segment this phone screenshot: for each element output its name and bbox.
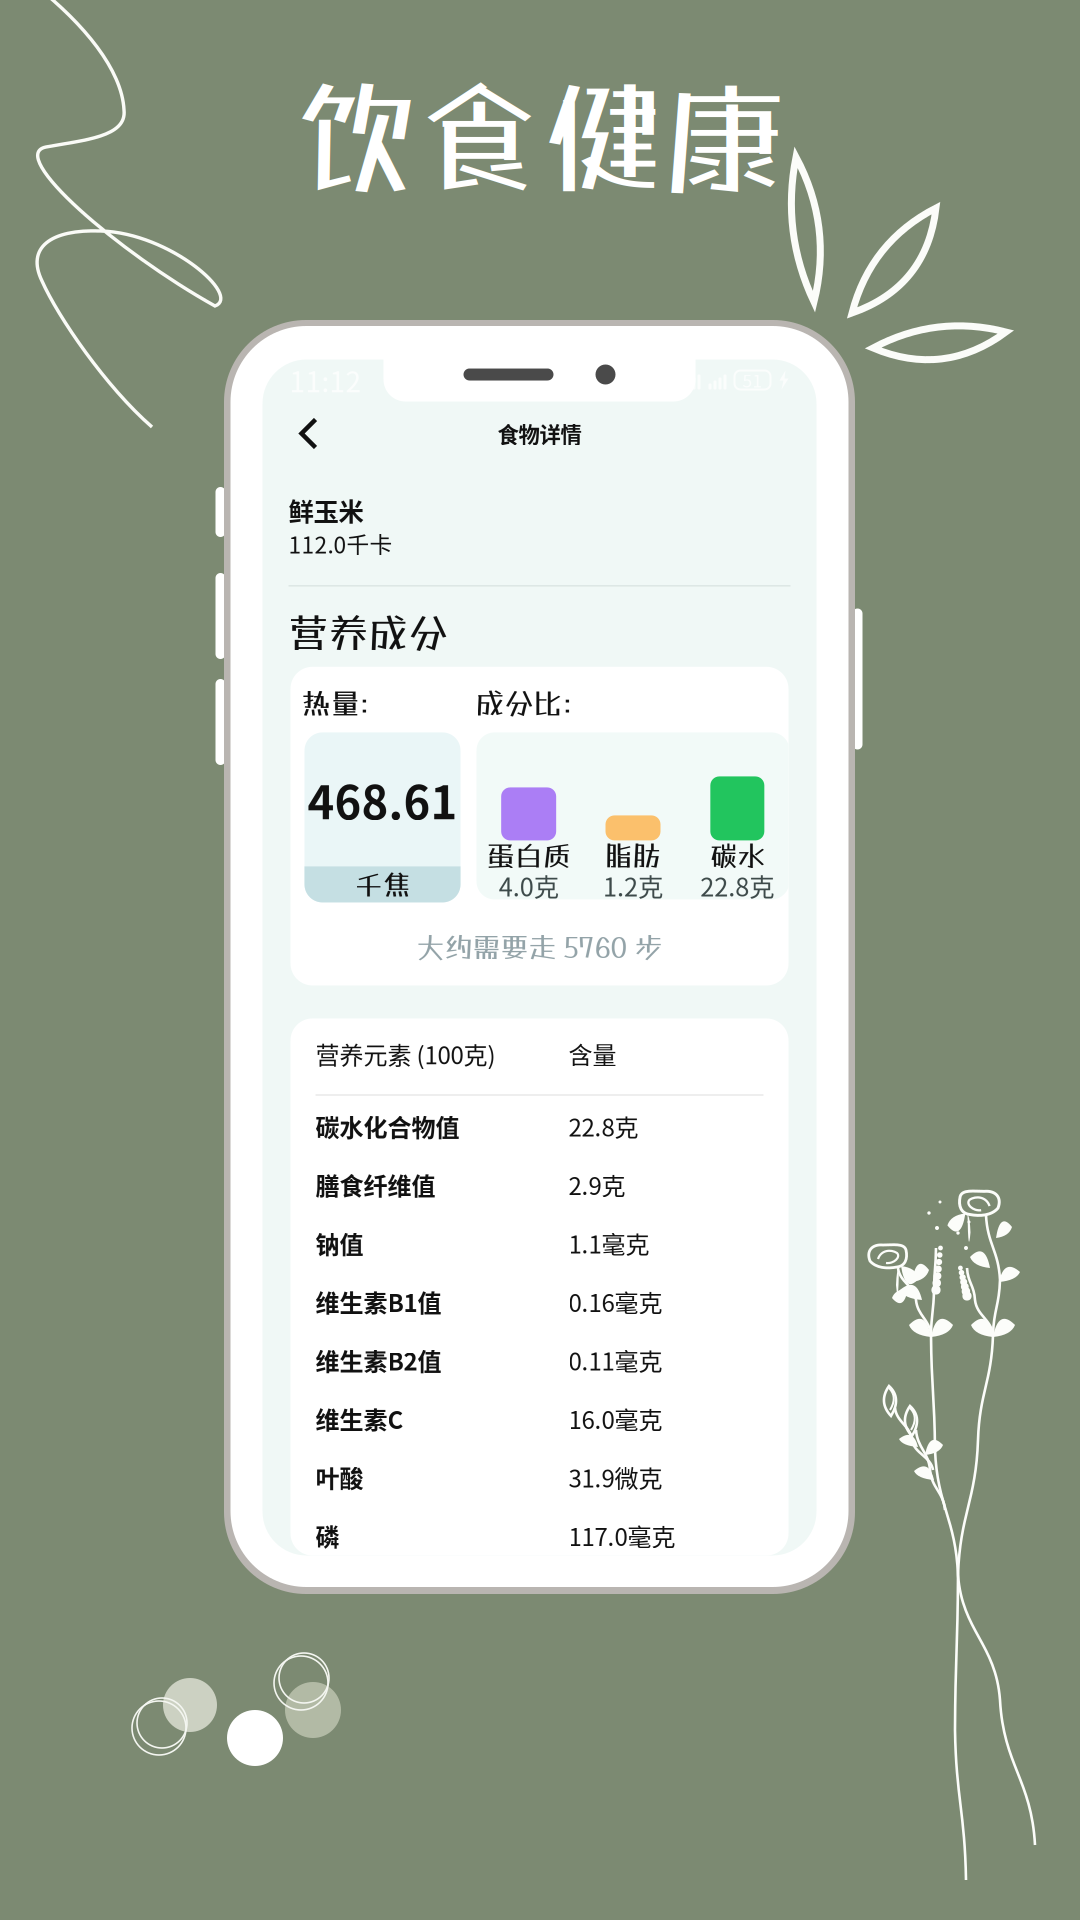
staticText: 叶酸 xyxy=(315,1460,363,1494)
staticText: 碳水 xyxy=(709,839,765,872)
staticText: 1.1毫克 xyxy=(568,1226,649,1260)
staticText: 112.0千卡 xyxy=(288,527,392,560)
staticText: 16.0毫克 xyxy=(568,1401,662,1436)
staticText: 468.61 xyxy=(307,767,457,832)
staticText: 31.9微克 xyxy=(568,1460,662,1494)
staticText: 11:12 xyxy=(289,360,361,400)
staticText: 2.9克 xyxy=(568,1167,625,1202)
staticText: 热量: xyxy=(301,686,369,720)
button[interactable]: 返回 xyxy=(278,408,338,458)
staticText: 22.8克 xyxy=(568,1109,638,1143)
staticText: 磷 xyxy=(315,1518,339,1553)
staticText: 0.11毫克 xyxy=(568,1343,662,1377)
staticText: 营养元素 (100克) xyxy=(315,1036,495,1071)
staticText: 4.0克 xyxy=(499,867,559,904)
staticText: 膳食纤维值 xyxy=(315,1167,435,1202)
staticText: 1.2克 xyxy=(603,867,663,904)
staticText: 含量 xyxy=(568,1036,616,1071)
staticText: 千焦 xyxy=(354,868,410,901)
staticText: 碳水化合物值 xyxy=(315,1109,459,1143)
staticText: 维生素B1值 xyxy=(315,1284,441,1319)
staticText: 蛋白质 xyxy=(487,839,571,872)
staticText: 117.0毫克 xyxy=(568,1518,675,1553)
staticText: 大约需要走 5760 步 xyxy=(416,930,662,963)
staticText: 食物详情 xyxy=(497,418,581,449)
staticText: 饮食健康 xyxy=(295,65,787,209)
staticText: 维生素C xyxy=(315,1401,403,1436)
staticText: 维生素B2值 xyxy=(315,1343,441,1377)
staticText: 脂肪 xyxy=(605,839,661,872)
staticText: 51 xyxy=(742,367,762,393)
staticText: 营养成分 xyxy=(288,609,448,656)
staticText: 鲜玉米 xyxy=(288,491,363,528)
staticText: 22.8克 xyxy=(700,867,774,904)
staticText: 0.16毫克 xyxy=(568,1284,662,1319)
staticText: 钠值 xyxy=(315,1226,363,1260)
staticText: 成分比: xyxy=(475,686,572,720)
